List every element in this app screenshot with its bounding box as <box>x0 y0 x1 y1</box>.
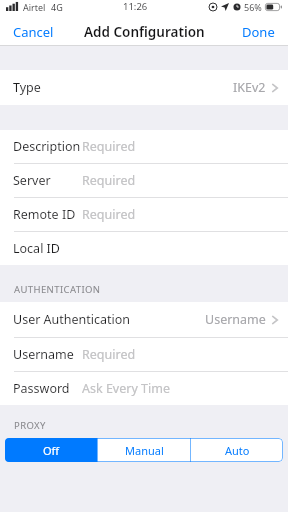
button[interactable]: Local ID <box>0 232 288 265</box>
staticText: Required <box>82 346 136 363</box>
button[interactable]: User Authentication <box>0 302 288 337</box>
staticText: PROXY <box>14 419 46 432</box>
staticText: Required <box>82 138 136 155</box>
button[interactable]: Password <box>0 372 288 405</box>
staticText: Username <box>13 346 74 363</box>
staticText: Local ID <box>13 240 60 257</box>
staticText: Server <box>13 172 51 189</box>
staticText: Airtel <box>23 1 46 13</box>
button[interactable]: Server <box>0 164 288 197</box>
staticText: 4G <box>51 1 63 13</box>
button[interactable]: Done <box>229 19 288 45</box>
button[interactable]: Auto <box>191 438 283 462</box>
staticText: Ask Every Time <box>82 380 170 397</box>
button[interactable]: Username <box>0 338 288 371</box>
staticText: Done <box>242 23 275 41</box>
staticText: Required <box>82 172 136 189</box>
staticText: 11:26 <box>123 0 148 13</box>
staticText: Type <box>13 79 41 96</box>
button[interactable]: Type <box>0 70 288 105</box>
staticText: Description <box>13 138 81 155</box>
staticText: Required <box>82 206 136 223</box>
staticText: Off <box>43 443 60 458</box>
staticText: AUTHENTICATION <box>14 283 101 296</box>
button[interactable]: Off <box>5 438 97 462</box>
staticText: User Authentication <box>13 311 131 328</box>
button[interactable]: Remote ID <box>0 198 288 231</box>
staticText: Remote ID <box>13 206 76 223</box>
staticText: Auto <box>225 443 250 458</box>
button[interactable]: Manual <box>98 438 190 462</box>
staticText: Cancel <box>13 23 54 41</box>
staticText: 56% <box>244 1 262 13</box>
staticText: Add Configuration <box>84 23 205 41</box>
staticText: Password <box>13 380 70 397</box>
staticText: Username <box>205 311 266 328</box>
button[interactable]: Cancel <box>0 19 67 45</box>
staticText: IKEv2 <box>233 79 266 96</box>
staticText: Manual <box>125 443 164 458</box>
button[interactable]: Description <box>0 130 288 163</box>
